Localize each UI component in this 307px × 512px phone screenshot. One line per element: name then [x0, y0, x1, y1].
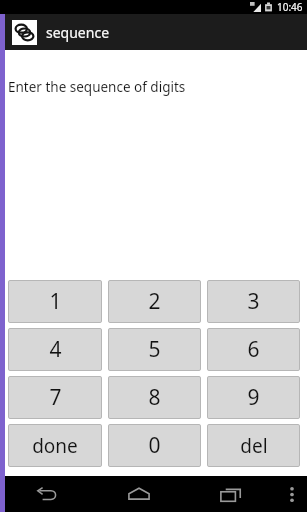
button[interactable]: 2 — [108, 280, 201, 323]
staticText: 6 — [247, 335, 260, 364]
staticText: Enter the sequence of digits — [8, 78, 186, 96]
button[interactable]: 6 — [207, 328, 300, 371]
button[interactable]: Home — [93, 476, 185, 512]
staticText: sequence — [46, 23, 110, 42]
button[interactable]: del — [207, 424, 300, 467]
staticText: 9 — [247, 383, 260, 412]
staticText: 8 — [148, 383, 161, 412]
staticText: 1 — [49, 287, 62, 316]
staticText: 2 — [148, 287, 161, 316]
button[interactable]: 7 — [8, 376, 102, 419]
button[interactable]: 8 — [108, 376, 201, 419]
button[interactable]: done — [8, 424, 102, 467]
staticText: 3 — [247, 287, 260, 316]
button[interactable]: 3 — [207, 280, 300, 323]
button[interactable]: Back — [0, 476, 93, 512]
button[interactable]: 5 — [108, 328, 201, 371]
staticText: 5 — [148, 335, 161, 364]
button[interactable]: 9 — [207, 376, 300, 419]
button[interactable]: More options — [277, 476, 307, 512]
button[interactable]: Recent apps — [185, 476, 277, 512]
button[interactable]: 1 — [8, 280, 102, 323]
staticText: 0 — [148, 431, 161, 460]
staticText: 10:46 — [277, 0, 303, 14]
button[interactable]: 0 — [108, 424, 201, 467]
staticText: 4 — [49, 335, 62, 364]
button[interactable]: 4 — [8, 328, 102, 371]
staticText: del — [240, 433, 268, 459]
staticText: 7 — [49, 383, 62, 412]
staticText: done — [32, 433, 78, 459]
